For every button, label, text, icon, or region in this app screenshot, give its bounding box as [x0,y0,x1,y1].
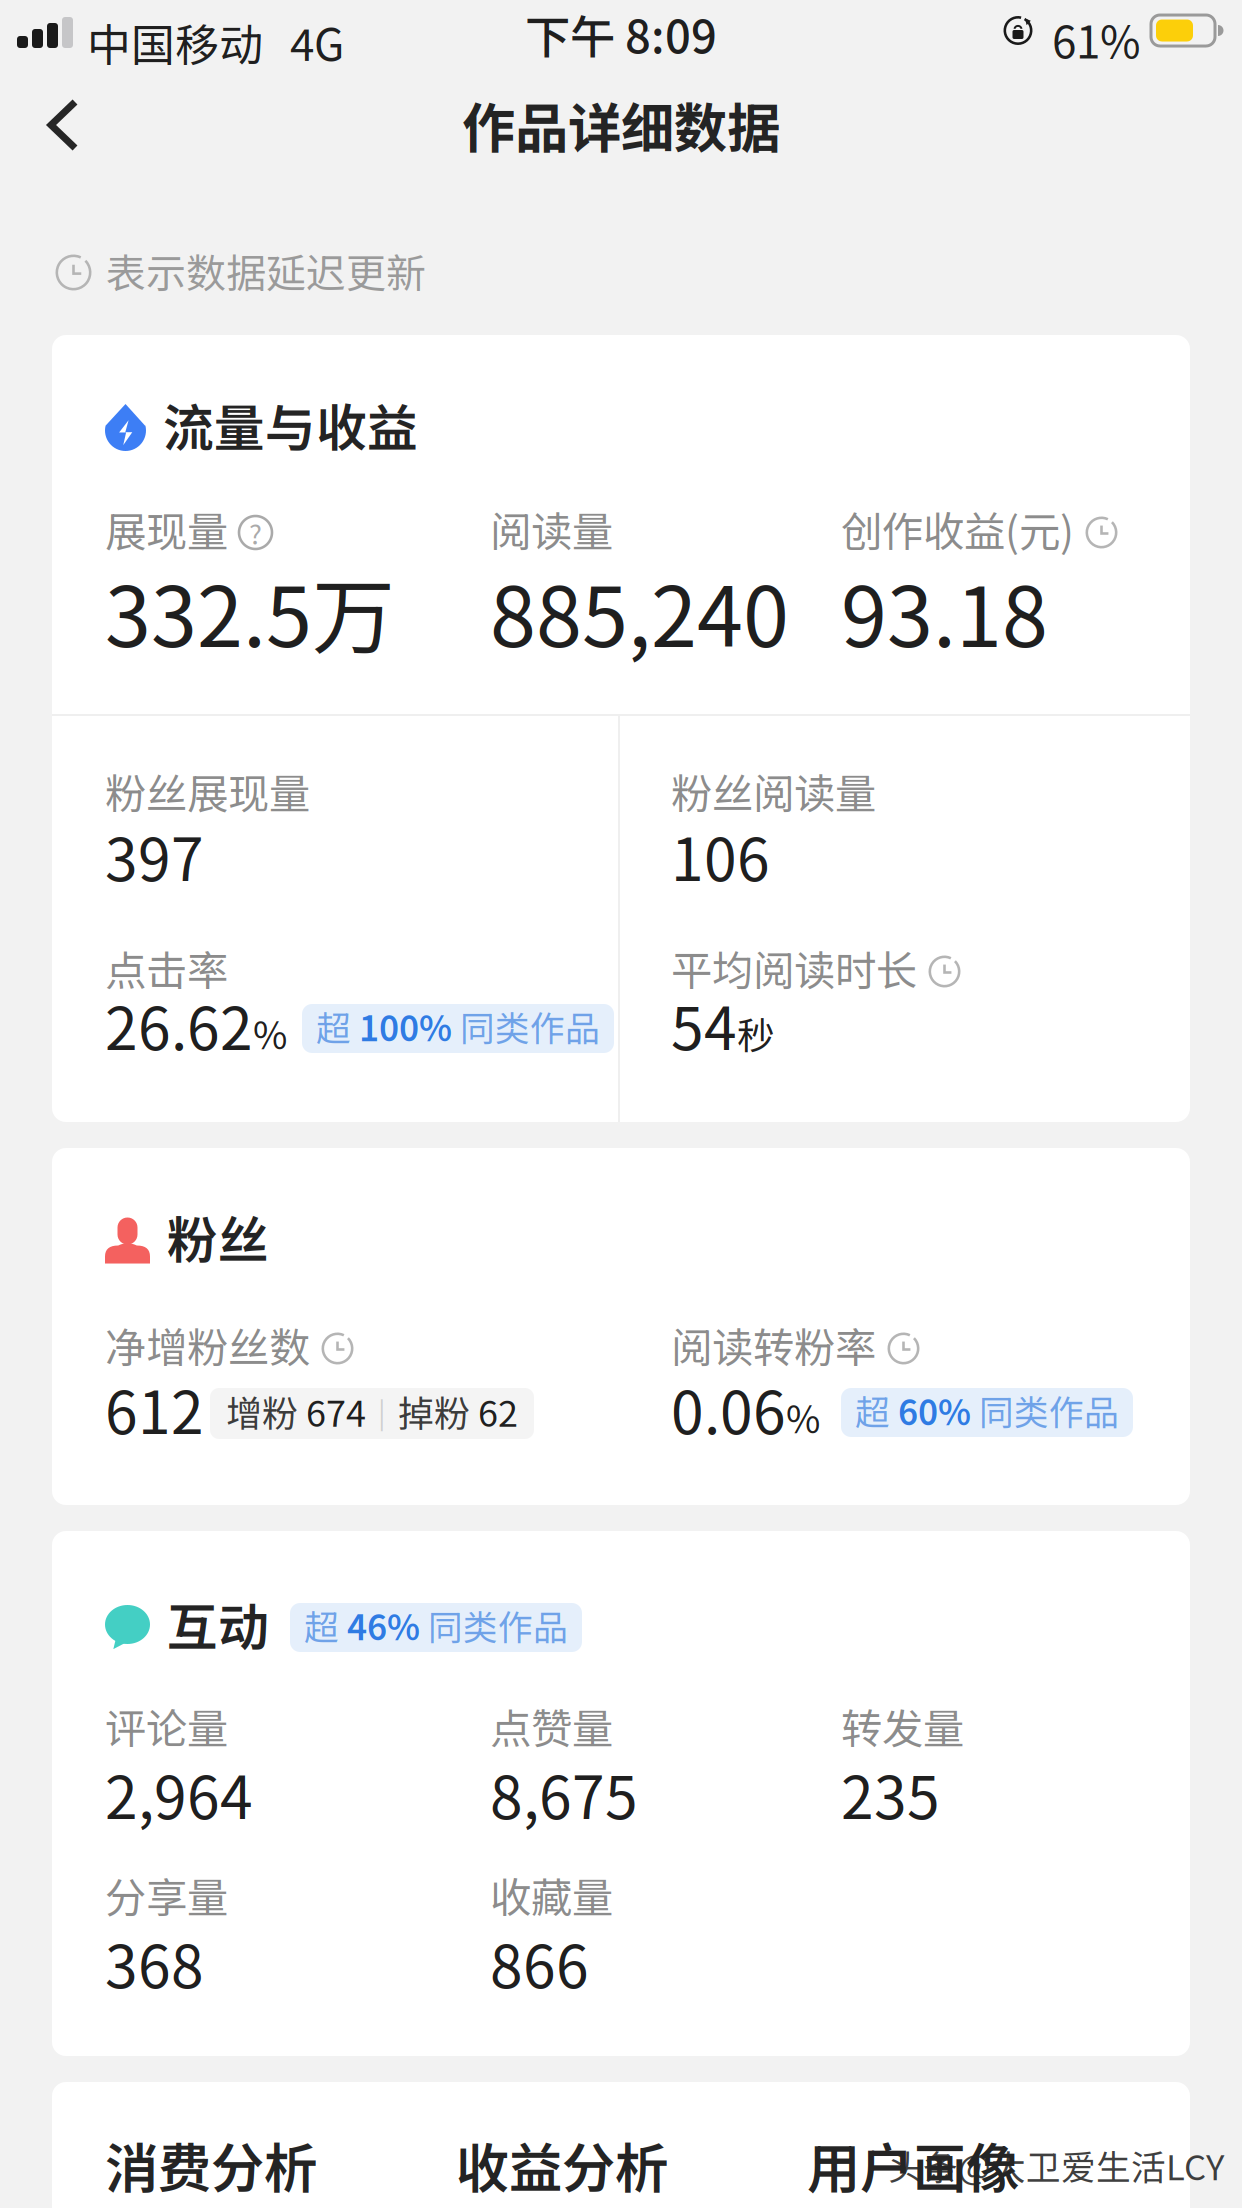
staticText: 超 [855,1385,898,1435]
staticText: 分享量 [105,1865,228,1925]
staticText: 同类作品 [420,1600,568,1650]
staticText: 评论量 [105,1696,228,1756]
staticText: 掉粉 [398,1385,478,1437]
staticText: 866 [490,1920,589,2005]
staticText: 收藏量 [490,1865,613,1925]
staticText: 612 [105,1366,204,1451]
staticText: 同类作品 [971,1385,1119,1435]
staticText: 26.62 [105,982,253,1067]
staticText: 超 [304,1600,347,1650]
button[interactable]: 用户画像 [807,2143,1107,2193]
staticText: 中国移动 [87,10,263,74]
staticText: 62 [478,1385,518,1437]
button[interactable]: 收益分析 [456,2143,807,2193]
staticText: 互动 [167,1587,269,1660]
staticText: 46% [347,1600,420,1650]
staticText: 60% [898,1385,971,1435]
staticText: 93.18 [841,551,1048,671]
staticText: ? [249,513,262,552]
staticText: 超 [316,1001,359,1051]
staticText: 同类作品 [452,1001,600,1051]
staticText: 转发量 [841,1696,964,1756]
staticText: 8,675 [490,1751,638,1836]
staticText: 增粉 [226,1385,306,1437]
staticText: 54 [671,982,737,1067]
staticText: 885,240 [490,551,789,671]
staticText: 368 [105,1920,204,2005]
staticText: 表示数据延迟更新 [106,241,426,299]
staticText: 106 [671,813,770,898]
staticText: 展现量 [105,499,228,559]
staticText: 消费分析 [105,2126,317,2203]
staticText: 674 [306,1385,366,1437]
staticText: 0.06 [671,1366,786,1451]
staticText: 332.5万 [105,551,395,671]
staticText: 4G [290,10,344,74]
button[interactable]: 返回 [0,74,112,184]
staticText: 创作收益(元) [841,499,1074,559]
staticText: 收益分析 [456,2126,668,2203]
staticText: 235 [841,1751,940,1836]
staticText: % [253,1006,287,1060]
staticText: 粉丝阅读量 [671,761,876,821]
staticText: 流量与收益 [163,388,418,461]
staticText: 阅读量 [490,499,613,559]
staticText: 平均阅读时长 [671,938,917,998]
staticText: 下午 8:09 [525,1,717,67]
staticText: 61% [1052,7,1141,71]
staticText: 2,964 [105,1751,253,1836]
staticText: 点击率 [105,938,228,998]
staticText: 粉丝 [167,1200,269,1273]
staticText: 用户画像 [807,2126,1019,2203]
staticText: 397 [105,813,204,898]
staticText: 作品详细数据 [462,86,780,163]
staticText: % [786,1390,820,1444]
staticText: 阅读转粉率 [671,1315,876,1375]
button[interactable]: 消费分析 [105,2143,456,2193]
staticText: 头条@大卫爱生活LCY [888,2140,1224,2190]
staticText: 净增粉丝数 [105,1315,310,1375]
staticText: 点赞量 [490,1696,613,1756]
staticText: 粉丝展现量 [105,761,310,821]
staticText: 100% [359,1001,452,1051]
staticText: | [366,1391,398,1431]
staticText: 秒 [737,1006,774,1060]
